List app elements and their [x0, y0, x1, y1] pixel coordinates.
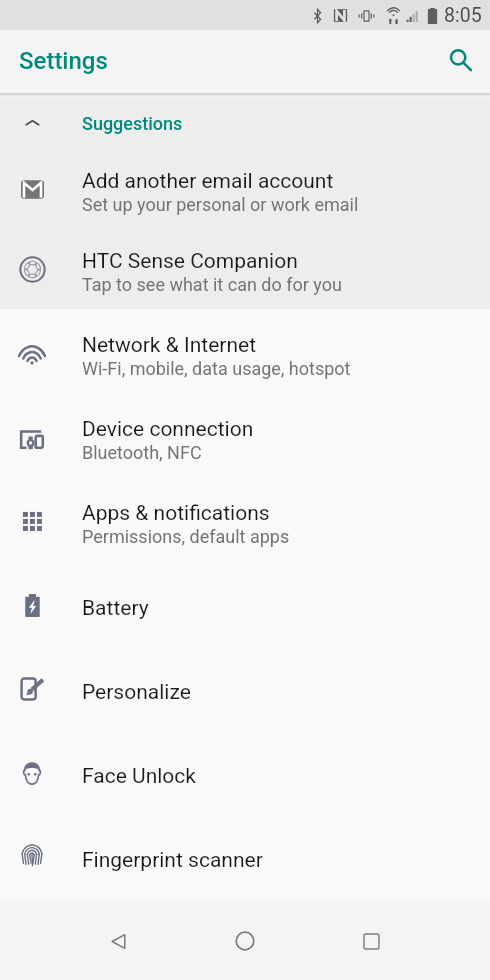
button[interactable]: HTC Sense Companion [0, 229, 490, 309]
button[interactable]: Suggestions [0, 97, 490, 149]
button[interactable]: Face Unlock [0, 731, 490, 815]
button[interactable]: Search [439, 38, 483, 82]
staticText: Network & Internet [82, 333, 257, 358]
button[interactable]: Apps & notifications [0, 479, 490, 563]
staticText: Face Unlock [82, 764, 196, 789]
button[interactable]: Device connection [0, 395, 490, 479]
staticText: Apps & notifications [82, 501, 270, 526]
staticText: Personalize [82, 680, 191, 705]
staticText: Bluetooth, NFC [82, 442, 202, 463]
staticText: Battery [82, 596, 149, 621]
staticText: Settings [19, 47, 108, 75]
staticText: Suggestions [82, 113, 183, 134]
staticText: Device connection [82, 417, 254, 442]
staticText: Set up your personal or work email [82, 194, 359, 215]
staticText: HTC Sense Companion [82, 249, 298, 274]
button[interactable]: Add another email account [0, 149, 490, 229]
staticText: Tap to see what it can do for you [82, 274, 342, 295]
button[interactable]: Recents [343, 913, 399, 969]
staticText: Add another email account [82, 169, 334, 194]
staticText: Fingerprint scanner [82, 848, 263, 873]
button[interactable]: Fingerprint scanner [0, 815, 490, 899]
staticText: 8:05 [444, 4, 482, 27]
button[interactable]: Personalize [0, 647, 490, 731]
button[interactable]: Battery [0, 563, 490, 647]
staticText: Wi-Fi, mobile, data usage, hotspot [82, 358, 351, 379]
staticText: Permissions, default apps [82, 526, 290, 547]
button[interactable]: Back [91, 913, 147, 969]
button[interactable]: Home [217, 913, 273, 969]
button[interactable]: Network & Internet [0, 311, 490, 395]
